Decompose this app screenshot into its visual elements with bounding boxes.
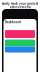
- staticText: achievements: [9, 5, 30, 9]
- staticText: Dashboard: [5, 20, 21, 24]
- staticText: Easily track your goals &: [2, 2, 38, 5]
